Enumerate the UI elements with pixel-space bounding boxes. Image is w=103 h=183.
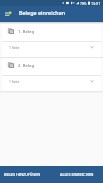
button[interactable]: 1. Beleg xyxy=(2,24,101,41)
staticText: BELEG HINZUFÜGEN xyxy=(4,172,41,177)
staticText: ALLES EINREICHEN xyxy=(60,172,94,177)
button[interactable]: BELEG HINZUFÜGEN xyxy=(0,166,45,183)
button[interactable]: 1 Seite xyxy=(2,76,101,91)
staticText: 78% xyxy=(80,1,87,5)
button[interactable]: 2. Beleg xyxy=(2,58,101,75)
button[interactable]: Navigation menu xyxy=(2,6,15,22)
staticText: 1. Beleg xyxy=(18,28,35,34)
staticText: 1 Seite xyxy=(9,45,20,49)
button[interactable]: 1 Seite xyxy=(2,42,101,57)
button[interactable]: ALLES EINREICHEN xyxy=(56,166,98,183)
staticText: 2. Beleg xyxy=(18,62,35,68)
staticText: 13:01 xyxy=(91,1,101,6)
staticText: Belege einreichen xyxy=(19,9,66,16)
staticText: 1 Seite xyxy=(9,79,20,83)
